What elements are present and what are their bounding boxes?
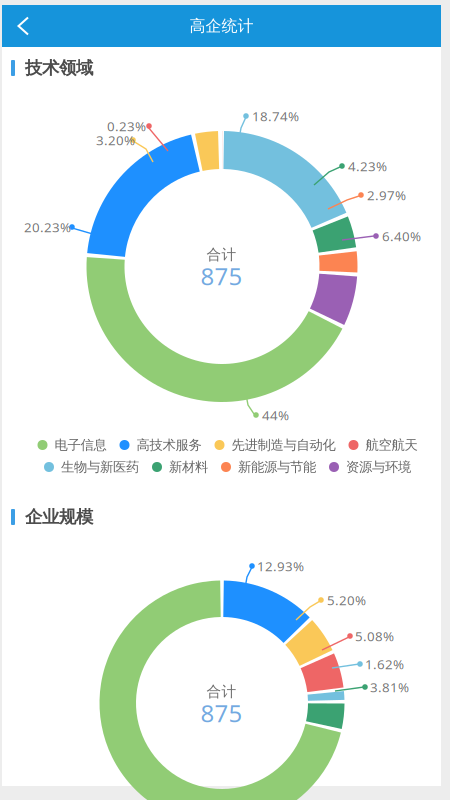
staticText: 2.97%: [367, 186, 406, 204]
staticText: 3.20%: [96, 131, 135, 149]
staticText: 0.23%: [107, 117, 146, 135]
staticText: 航空航天: [365, 437, 417, 453]
staticText: 5.20%: [327, 591, 366, 609]
staticText: 6.40%: [382, 227, 421, 245]
staticText: 875: [200, 697, 242, 729]
staticText: 3.81%: [370, 678, 409, 696]
staticText: 新材料: [169, 459, 208, 475]
staticText: 44%: [262, 406, 289, 424]
staticText: 高企统计: [189, 16, 253, 36]
staticText: 合计: [206, 682, 236, 700]
staticText: 12.93%: [257, 557, 304, 575]
staticText: 高技术服务: [136, 437, 201, 453]
staticText: 技术领域: [25, 57, 93, 79]
staticText: 先进制造与自动化: [231, 437, 335, 453]
staticText: 资源与环境: [346, 459, 411, 475]
staticText: 企业规模: [25, 506, 93, 528]
staticText: 合计: [206, 245, 236, 263]
button[interactable]: Back: [2, 5, 44, 47]
staticText: 生物与新医药: [61, 459, 139, 475]
staticText: 18.74%: [252, 107, 299, 125]
staticText: 20.23%: [24, 218, 71, 236]
staticText: 875: [200, 260, 242, 292]
staticText: 电子信息: [54, 437, 106, 453]
staticText: 4.23%: [348, 157, 387, 175]
staticText: 5.08%: [355, 627, 394, 645]
staticText: 1.62%: [365, 655, 404, 673]
staticText: 新能源与节能: [238, 459, 316, 475]
